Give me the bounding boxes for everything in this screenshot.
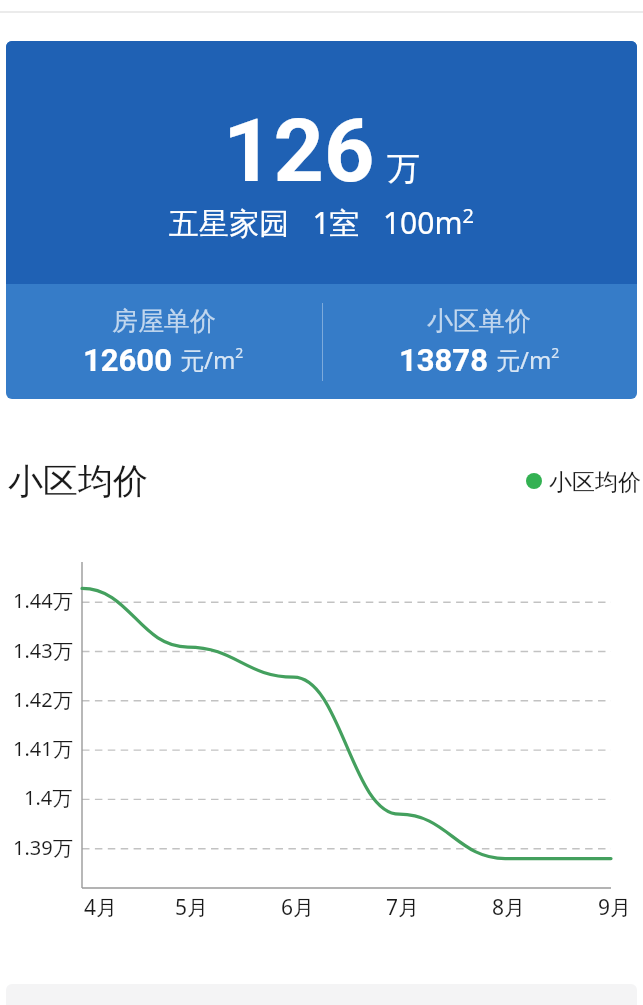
- staticText: 13878: [399, 342, 488, 378]
- staticText: 8月: [492, 893, 526, 922]
- staticText: 万: [387, 148, 420, 190]
- staticText: 1.42万: [13, 686, 73, 713]
- staticText: 小区单价: [427, 305, 531, 338]
- staticText: 元/m2: [180, 343, 244, 376]
- staticText: 1.39万: [13, 834, 73, 861]
- staticText: 小区均价: [549, 468, 641, 497]
- staticText: 房屋单价: [112, 305, 216, 338]
- staticText: 小区均价: [8, 459, 148, 503]
- staticText: 12600: [83, 342, 172, 378]
- button[interactable]: 房屋单价: [6, 284, 321, 399]
- button[interactable]: 小区单价: [321, 284, 637, 399]
- staticText: 五星家园 1室 100m2: [169, 202, 474, 243]
- staticText: 4月: [84, 893, 118, 922]
- staticText: 1.43万: [13, 637, 73, 664]
- staticText: 6月: [281, 893, 315, 922]
- staticText: 7月: [386, 893, 420, 922]
- staticText: 9月: [598, 893, 632, 922]
- staticText: 1.41万: [13, 735, 73, 762]
- staticText: 1.4万: [24, 784, 73, 811]
- button[interactable]: 126: [6, 41, 637, 399]
- staticText: 1.44万: [13, 587, 73, 614]
- staticText: 126: [223, 99, 375, 202]
- staticText: 5月: [175, 893, 209, 922]
- staticText: 元/m2: [496, 343, 560, 376]
